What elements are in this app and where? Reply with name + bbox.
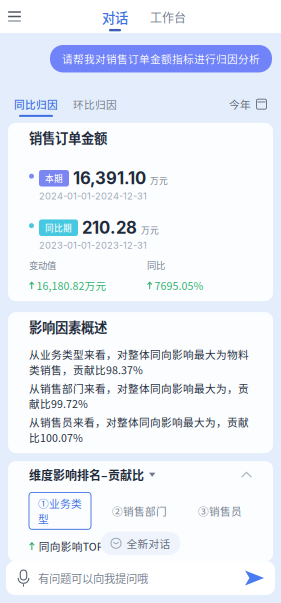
- staticText: 210.28: [82, 218, 137, 238]
- staticText: 从销售员来看，对整体同向影响最大为，贡献比100.07%: [29, 414, 249, 445]
- staticText: 环比归因: [73, 96, 117, 112]
- staticText: ②销售部门: [112, 503, 167, 519]
- button[interactable]: 同比归因: [14, 96, 58, 117]
- staticText: 全新对话: [126, 536, 170, 551]
- button[interactable]: 今年: [229, 96, 267, 117]
- button[interactable]: Send: [245, 570, 264, 585]
- staticText: 2024-01-01-2024-12-31: [39, 190, 147, 202]
- button[interactable]: Voice input: [17, 568, 30, 587]
- button[interactable]: 环比归因: [73, 96, 117, 117]
- button[interactable]: Menu: [0, 0, 29, 33]
- staticText: 同比期: [45, 221, 72, 234]
- staticText: 变动值: [29, 258, 56, 272]
- button[interactable]: 对话: [102, 2, 128, 31]
- staticText: 同向影响TOP5: [39, 538, 110, 554]
- staticText: 对话: [102, 8, 128, 27]
- staticText: 2023-01-01-2023-12-31: [39, 240, 147, 251]
- button[interactable]: ①业务类型: [29, 492, 91, 529]
- staticText: 从业务类型来看，对整体同向影响最大为物料类销售，贡献比98.37%: [29, 346, 249, 377]
- staticText: 7695.05%: [154, 278, 203, 293]
- staticText: 从销售部门来看，对整体同向影响最大为，贡献比99.72%: [29, 380, 249, 411]
- staticText: ①业务类型: [38, 495, 82, 526]
- staticText: 万元: [141, 223, 159, 236]
- button[interactable]: ②销售部门: [103, 500, 176, 522]
- staticText: 维度影响排名–贡献比: [29, 466, 144, 483]
- staticText: 同比归因: [14, 96, 58, 112]
- staticText: 万元: [150, 174, 168, 186]
- staticText: 销售订单金额: [29, 128, 107, 147]
- staticText: 工作台: [150, 9, 186, 26]
- staticText: 今年: [229, 96, 251, 112]
- staticText: 16,391.10: [73, 168, 146, 188]
- staticText: ③销售员: [198, 503, 242, 519]
- staticText: 16,180.82万元: [36, 278, 106, 293]
- staticText: 请帮我对销售订单金额指标进行归因分析: [62, 51, 260, 66]
- staticText: 有问题可以向我提问哦: [38, 570, 148, 586]
- staticText: 影响因素概述: [29, 317, 107, 336]
- staticText: 本期: [45, 172, 63, 184]
- button[interactable]: 全新对话: [100, 532, 180, 555]
- button[interactable]: 工作台: [150, 3, 186, 30]
- staticText: 同比: [147, 258, 165, 272]
- button[interactable]: ③销售员: [189, 500, 251, 522]
